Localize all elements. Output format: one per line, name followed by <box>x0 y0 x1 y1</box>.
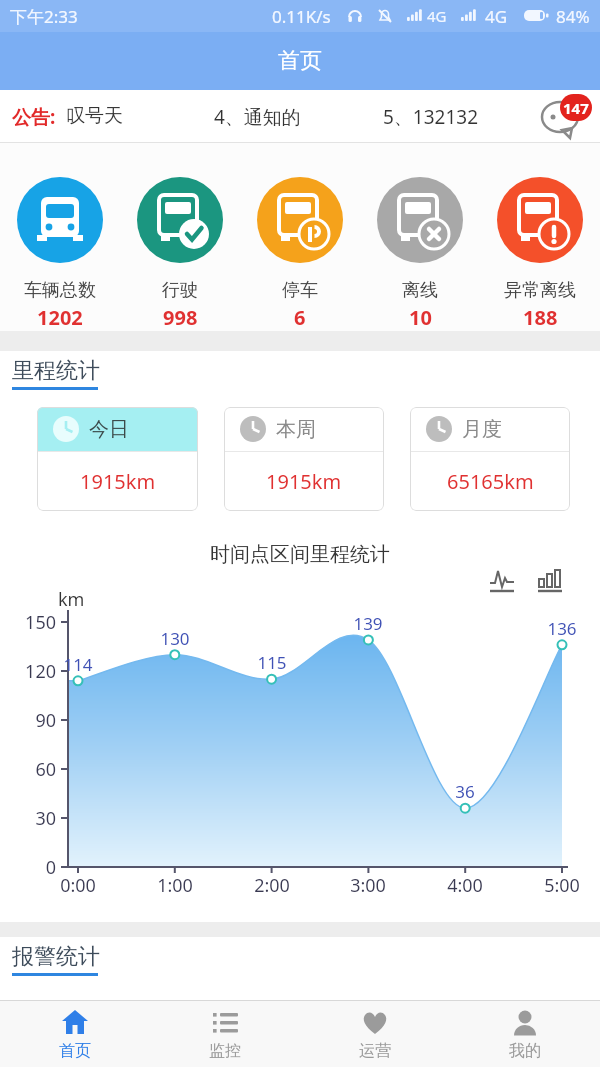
staticText: 里程统计 <box>12 357 100 385</box>
staticText: 90 <box>18 708 56 733</box>
staticText: 行驶 <box>162 279 198 302</box>
staticText: 139 <box>338 612 398 635</box>
staticText: 今日 <box>89 417 129 442</box>
staticText: 1915km <box>80 468 156 495</box>
staticText: 130 <box>145 627 205 650</box>
button[interactable]: 离线 <box>360 143 480 331</box>
staticText: 150 <box>18 610 56 635</box>
staticText: 我的 <box>509 1041 541 1061</box>
staticText: 188 <box>523 304 558 331</box>
button[interactable]: 147 <box>540 94 592 140</box>
staticText: 下午2:33 <box>10 5 78 28</box>
staticText: 6 <box>294 304 306 331</box>
staticText: 5:00 <box>532 873 592 898</box>
staticText: 1915km <box>266 468 342 495</box>
staticText: 36 <box>435 780 495 803</box>
button[interactable]: 首页 <box>0 1001 150 1067</box>
button[interactable]: 运营 <box>300 1001 450 1067</box>
staticText: 136 <box>532 617 592 640</box>
staticText: 2:00 <box>242 873 302 898</box>
staticText: 5、132132 <box>383 104 479 130</box>
staticText: km <box>58 587 85 612</box>
staticText: 异常离线 <box>504 279 576 302</box>
button[interactable]: 公告: <box>0 90 600 142</box>
button[interactable]: 异常离线 <box>480 143 600 331</box>
staticText: 1:00 <box>145 873 205 898</box>
staticText: 监控 <box>209 1041 241 1061</box>
staticText: 115 <box>242 651 302 674</box>
staticText: 本周 <box>276 417 316 442</box>
staticText: 月度 <box>462 417 502 442</box>
staticText: 147 <box>563 98 589 118</box>
staticText: 1202 <box>37 304 83 331</box>
staticText: 4G <box>427 6 447 26</box>
staticText: 报警统计 <box>12 943 100 971</box>
staticText: 3:00 <box>338 873 398 898</box>
staticText: 10 <box>409 304 432 331</box>
staticText: 84% <box>556 5 590 28</box>
button[interactable]: 本周 <box>224 407 384 511</box>
staticText: 首页 <box>278 47 322 75</box>
staticText: 120 <box>18 659 56 684</box>
staticText: 时间点区间里程统计 <box>0 542 600 567</box>
staticText: 65165km <box>447 468 534 495</box>
staticText: 0:00 <box>48 873 108 898</box>
staticText: 4、通知的 <box>214 104 301 130</box>
staticText: 4G <box>485 5 508 28</box>
button[interactable]: 行驶 <box>120 143 240 331</box>
staticText: 停车 <box>282 279 318 302</box>
button[interactable] <box>536 567 570 595</box>
staticText: 公告: <box>12 104 56 130</box>
staticText: 4:00 <box>435 873 495 898</box>
staticText: 离线 <box>402 279 438 302</box>
staticText: 叹号天 <box>66 104 123 128</box>
staticText: 60 <box>18 757 56 782</box>
button[interactable] <box>488 567 522 595</box>
staticText: 30 <box>18 806 56 831</box>
staticText: 998 <box>163 304 198 331</box>
staticText: 0 <box>18 855 56 880</box>
button[interactable]: 今日 <box>37 407 198 511</box>
staticText: 运营 <box>359 1041 391 1061</box>
button[interactable]: 车辆总数 <box>0 143 120 331</box>
staticText: 0.11K/s <box>272 5 331 28</box>
button[interactable]: 月度 <box>410 407 570 511</box>
button[interactable]: 监控 <box>150 1001 300 1067</box>
staticText: 车辆总数 <box>24 279 96 302</box>
staticText: 114 <box>48 653 108 676</box>
staticText: 首页 <box>59 1041 91 1061</box>
button[interactable]: 停车 <box>240 143 360 331</box>
button[interactable]: 我的 <box>450 1001 600 1067</box>
